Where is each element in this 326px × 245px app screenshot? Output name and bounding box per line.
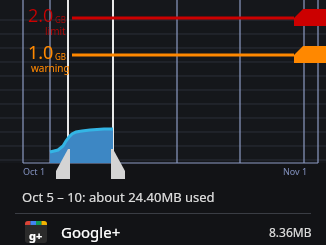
staticText: g+ xyxy=(29,228,43,243)
staticText: warning xyxy=(31,61,70,75)
staticText: Oct 1 xyxy=(23,165,46,177)
staticText: 2.0 xyxy=(28,3,54,28)
staticText: GB xyxy=(55,51,67,62)
staticText: Google+ xyxy=(61,222,121,242)
staticText: 8.36MB xyxy=(269,224,312,240)
button[interactable]: g+ xyxy=(0,219,326,245)
staticText: Oct 5 – 10: about 24.40MB used xyxy=(22,188,215,206)
staticText: 1.0 xyxy=(28,40,54,65)
staticText: Nov 1 xyxy=(283,165,308,177)
staticText: limit xyxy=(45,24,66,38)
staticText: GB xyxy=(55,14,67,25)
